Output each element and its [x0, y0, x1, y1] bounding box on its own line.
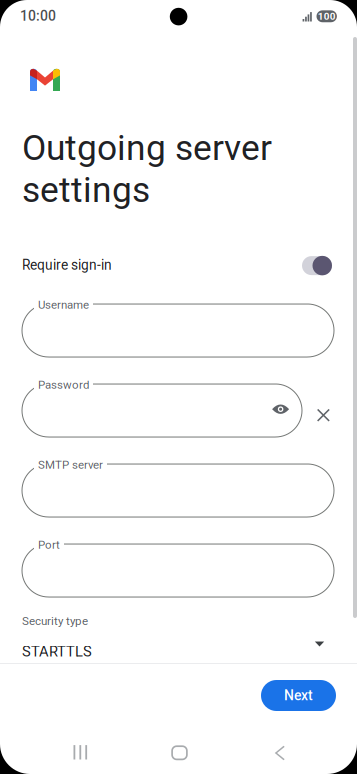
staticText: Next: [284, 687, 313, 704]
button[interactable]: Next: [261, 680, 336, 711]
button[interactable]: Back: [256, 732, 304, 774]
staticText: Require sign-in: [22, 257, 112, 273]
button[interactable]: Require sign-in: [299, 253, 335, 279]
staticText: 10:00: [20, 8, 56, 24]
button[interactable]: Show password: [264, 392, 298, 426]
staticText: settings: [22, 169, 150, 211]
staticText: Password: [38, 378, 89, 391]
staticText: Username: [38, 298, 89, 311]
staticText: 100: [318, 10, 336, 22]
button[interactable]: Clear password: [307, 399, 339, 431]
staticText: STARTTLS: [22, 643, 92, 660]
button[interactable]: Home: [155, 732, 203, 774]
staticText: SMTP server: [38, 458, 103, 471]
staticText: Security type: [22, 614, 88, 628]
staticText: Port: [38, 538, 60, 551]
button[interactable]: Recent apps: [56, 731, 104, 773]
staticText: Outgoing server: [22, 127, 272, 169]
button[interactable]: STARTTLS: [22, 633, 334, 663]
